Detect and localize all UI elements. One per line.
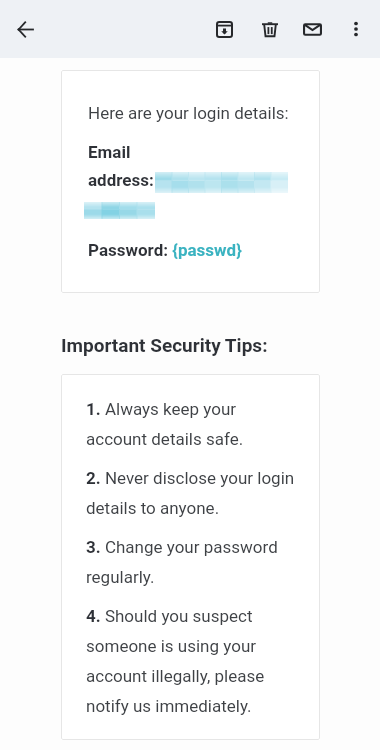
button[interactable]: Mark unread (292, 6, 333, 52)
staticText: Password: {passwd} (88, 240, 242, 260)
staticText: 1. Always keep your account details safe… (86, 399, 298, 449)
staticText: address: (88, 170, 154, 190)
staticText: Here are your login details: (88, 103, 289, 123)
button[interactable]: Delete (247, 6, 292, 52)
staticText: 3. Change your password regularly. (86, 537, 298, 587)
button[interactable]: Archive (202, 6, 247, 52)
staticText: 4. Should you suspect someone is using y… (86, 606, 298, 716)
staticText: 2. Never disclose your login details to … (86, 468, 298, 518)
staticText: Important Security Tips: (61, 334, 268, 356)
button[interactable]: Back (3, 7, 48, 52)
staticText: Email (88, 142, 131, 162)
button[interactable]: More options (333, 6, 378, 52)
